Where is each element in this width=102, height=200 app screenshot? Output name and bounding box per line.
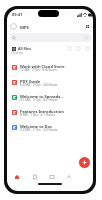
staticText: 6.2 MB · 3 Oct · 3:4 Hours: [20, 83, 72, 87]
button[interactable]: Search: [10, 33, 92, 42]
button[interactable]: Shared: [43, 170, 60, 183]
button[interactable]: Account: [60, 170, 77, 183]
button[interactable]: [7, 62, 93, 77]
staticText: 18 items: [11, 51, 24, 55]
staticText: All files: [18, 46, 32, 51]
button[interactable]: Create new: [79, 157, 90, 168]
staticText: PDF Guide: [20, 79, 66, 84]
staticText: Work with Cloud Store: [20, 64, 66, 69]
button[interactable]: Sort: [67, 46, 72, 51]
button[interactable]: Filter: [76, 46, 81, 51]
staticText: 4.1 MB · 2 Oct · 8:2 Hours: [20, 98, 72, 102]
staticText: 09:41: [12, 12, 23, 17]
staticText: 8 MB · 1 Oct · 4:1 Hours: [20, 113, 72, 117]
staticText: 12 MB · 7 Oct · 9:4 Hours: [20, 68, 72, 72]
button[interactable]: [7, 122, 93, 137]
button[interactable]: Grid view: [85, 24, 90, 29]
staticText: Welcome to Doc: [20, 124, 66, 129]
staticText: Features Introduction: [20, 109, 66, 114]
staticText: MPS: [20, 25, 29, 31]
button[interactable]: All files: [10, 45, 30, 55]
button[interactable]: [7, 77, 93, 92]
button[interactable]: [7, 92, 93, 107]
staticText: 3.2 MB · 1 Oct · 2:0 Hours: [20, 128, 72, 132]
staticText: Welcome to Spreadsheet: [20, 94, 66, 99]
button[interactable]: Account: [84, 35, 89, 40]
button[interactable]: Profile: [10, 23, 17, 30]
button[interactable]: Files: [26, 170, 43, 183]
button[interactable]: Layout: [85, 46, 90, 51]
button[interactable]: [7, 107, 93, 122]
button[interactable]: Home: [8, 170, 25, 183]
